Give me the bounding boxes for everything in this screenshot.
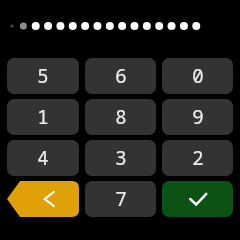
button[interactable]: 0 <box>162 58 233 94</box>
staticText: 1 <box>37 104 49 130</box>
button[interactable]: 5 <box>7 58 79 94</box>
button[interactable]: 4 <box>7 140 79 176</box>
button[interactable]: 2 <box>162 140 233 176</box>
staticText: 7 <box>115 186 127 212</box>
staticText: 6 <box>115 63 127 89</box>
button[interactable]: 3 <box>85 140 156 176</box>
button[interactable]: 8 <box>85 99 156 135</box>
button[interactable]: 9 <box>162 99 233 135</box>
staticText: 9 <box>192 104 204 130</box>
staticText: 0 <box>192 63 204 89</box>
button[interactable]: 1 <box>7 99 79 135</box>
button[interactable]: 7 <box>85 181 156 217</box>
staticText: 5 <box>37 63 49 89</box>
staticText: 4 <box>37 145 49 171</box>
staticText: 8 <box>115 104 127 130</box>
button[interactable]: Delete <box>7 181 79 217</box>
staticText: 3 <box>115 145 127 171</box>
staticText: 2 <box>192 145 204 171</box>
button[interactable]: Confirm <box>162 181 233 217</box>
button[interactable]: 6 <box>85 58 156 94</box>
